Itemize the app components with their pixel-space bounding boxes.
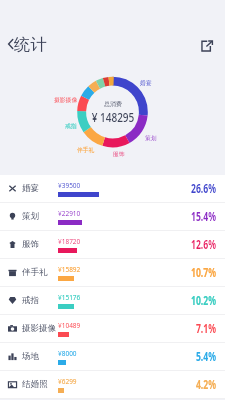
- staticText: 统计: [14, 34, 47, 54]
- staticText: ¥39500: [58, 181, 81, 190]
- staticText: ¥15892: [58, 265, 81, 274]
- button[interactable]: 摄影摄像: [0, 315, 225, 343]
- button[interactable]: Share: [196, 35, 217, 56]
- staticText: ¥8000: [58, 349, 77, 358]
- button[interactable]: 婚宴: [0, 175, 225, 203]
- staticText: 服饰: [113, 150, 125, 157]
- staticText: 总消费: [104, 100, 122, 108]
- staticText: 策划: [22, 211, 39, 222]
- staticText: 摄影摄像: [54, 96, 78, 103]
- button[interactable]: 伴手礼: [0, 259, 225, 287]
- staticText: 15.4%: [190, 208, 216, 225]
- staticText: 26.6%: [190, 180, 216, 197]
- staticText: 10.2%: [190, 292, 216, 309]
- button[interactable]: Back: [6, 34, 47, 54]
- staticText: 4.2%: [195, 376, 216, 393]
- staticText: 5.4%: [195, 348, 216, 365]
- staticText: 10.7%: [190, 264, 216, 281]
- button[interactable]: 结婚照: [0, 371, 225, 399]
- staticText: ¥18720: [58, 237, 81, 246]
- staticText: 戒指: [65, 122, 77, 129]
- button[interactable]: 服饰: [0, 231, 225, 259]
- staticText: 12.6%: [190, 236, 216, 253]
- staticText: 策划: [145, 134, 157, 141]
- staticText: ¥ 148295: [92, 109, 134, 126]
- staticText: 伴手礼: [22, 267, 48, 278]
- staticText: 戒指: [22, 295, 39, 306]
- staticText: 服饰: [22, 239, 39, 250]
- staticText: ¥6299: [58, 377, 77, 386]
- staticText: 婚宴: [22, 183, 39, 194]
- staticText: 婚宴: [140, 79, 152, 86]
- staticText: 伴手礼: [77, 146, 95, 153]
- staticText: 结婚照: [22, 379, 48, 390]
- button[interactable]: 策划: [0, 203, 225, 231]
- staticText: 7.1%: [195, 320, 216, 337]
- button[interactable]: 场地: [0, 343, 225, 371]
- staticText: 场地: [22, 351, 39, 362]
- staticText: ¥10489: [58, 321, 81, 330]
- button[interactable]: 戒指: [0, 287, 225, 315]
- staticText: ¥15176: [58, 293, 81, 302]
- staticText: ¥22910: [58, 209, 81, 218]
- staticText: 摄影摄像: [22, 323, 56, 334]
